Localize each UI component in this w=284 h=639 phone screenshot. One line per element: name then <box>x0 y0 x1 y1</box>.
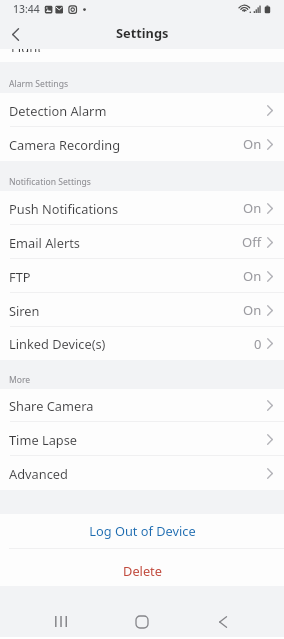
staticText: On <box>243 301 262 319</box>
staticText: FTP <box>9 268 31 285</box>
button[interactable]: Siren <box>0 293 284 327</box>
staticText: Notification Settings <box>9 176 91 188</box>
staticText: Share Camera <box>9 397 94 414</box>
button[interactable]: Home <box>101 616 182 637</box>
staticText: Delete <box>123 562 162 579</box>
staticText: Advanced <box>9 465 68 482</box>
button[interactable]: Log Out of Device <box>0 514 284 549</box>
staticText: Linked Device(s) <box>9 335 106 352</box>
button[interactable]: Back <box>0 20 30 49</box>
staticText: Log Out of Device <box>89 522 196 539</box>
button[interactable]: Linked Device(s) <box>0 327 284 360</box>
staticText: Camera Recording <box>9 136 121 153</box>
button[interactable]: Time Lapse <box>0 422 284 456</box>
staticText: Time Lapse <box>9 431 78 448</box>
staticText: 13:44 <box>13 2 40 16</box>
staticText: Off <box>242 233 262 251</box>
button[interactable]: Camera Recording <box>0 127 284 161</box>
staticText: 0 <box>254 335 262 353</box>
button[interactable]: Share Camera <box>0 389 284 422</box>
button[interactable]: FTP <box>0 259 284 293</box>
button[interactable]: Recents <box>21 616 101 637</box>
button[interactable]: Push Notifications <box>0 191 284 225</box>
staticText: On <box>243 135 262 153</box>
button[interactable]: Detection Alarm <box>0 93 284 127</box>
staticText: More <box>9 374 31 386</box>
staticText: On <box>243 267 262 285</box>
staticText: On <box>243 199 262 217</box>
staticText: Alarm Settings <box>9 78 69 90</box>
staticText: Email Alerts <box>9 234 80 251</box>
staticText: Siren <box>9 302 40 319</box>
staticText: Settings <box>116 24 169 41</box>
button[interactable]: Delete <box>0 549 284 586</box>
button[interactable]: Email Alerts <box>0 225 284 259</box>
staticText: Light <box>11 49 42 52</box>
staticText: Detection Alarm <box>9 102 107 119</box>
button[interactable]: Back <box>182 616 263 637</box>
button[interactable]: Advanced <box>0 456 284 490</box>
staticText: Push Notifications <box>9 200 119 217</box>
